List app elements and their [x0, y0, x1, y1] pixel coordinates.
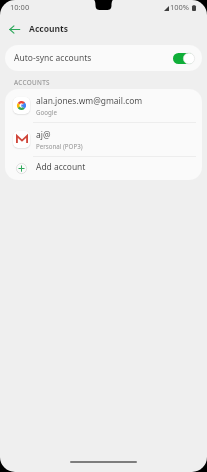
- staticText: aj@: [36, 129, 51, 141]
- staticText: Personal (POP3): [36, 142, 83, 150]
- staticText: Google: [36, 108, 57, 116]
- button[interactable]: Back: [6, 21, 23, 38]
- button[interactable]: aj@: [5, 123, 202, 156]
- staticText: Auto-sync accounts: [14, 52, 92, 64]
- staticText: alan.jones.wm@gmail.com: [36, 95, 143, 107]
- button[interactable]: Auto-sync accounts: [5, 45, 202, 71]
- button[interactable]: alan.jones.wm@gmail.com: [5, 89, 202, 122]
- staticText: 100%: [170, 2, 190, 12]
- staticText: Add account: [36, 161, 86, 173]
- staticText: 10:00: [10, 2, 30, 12]
- staticText: ACCOUNTS: [14, 78, 50, 87]
- staticText: Accounts: [29, 23, 68, 35]
- button[interactable]: Add account: [5, 157, 202, 180]
